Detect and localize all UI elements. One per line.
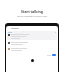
button[interactable] bbox=[8, 48, 56, 51]
staticText: Ask us a question or start a chat bbox=[0, 15, 64, 18]
staticText: Start talking bbox=[0, 9, 64, 14]
button[interactable] bbox=[8, 42, 56, 45]
button[interactable] bbox=[7, 31, 57, 40]
button[interactable]: Start recording bbox=[31, 59, 34, 62]
